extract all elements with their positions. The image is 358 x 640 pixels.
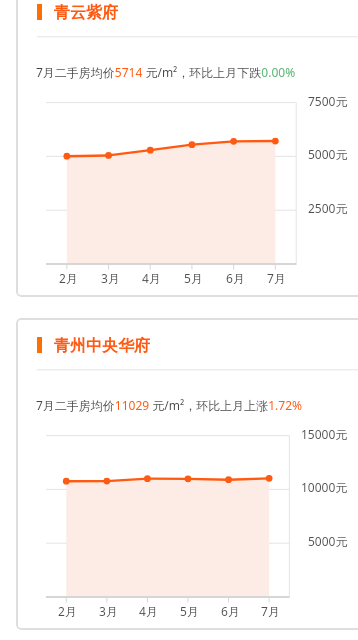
staticText: 2500元 [308,200,348,216]
staticText: 7月 [261,603,280,619]
staticText: 5月 [184,270,203,286]
staticText: 5000元 [308,146,348,162]
staticText: 3月 [99,603,118,619]
button[interactable]: 青云紫府 [16,0,358,297]
staticText: 7月二手房均价5714 元/m²，环比上月下跌0.00% [36,64,296,80]
staticText: 10000元 [301,479,348,495]
staticText: 15000元 [301,426,348,442]
staticText: 6月 [221,603,240,619]
staticText: 5000元 [308,533,348,549]
staticText: 7月 [267,270,286,286]
staticText: 2月 [59,270,78,286]
staticText: 4月 [142,270,161,286]
staticText: 青云紫府 [54,3,118,23]
staticText: 青州中央华府 [54,336,150,356]
staticText: 2月 [58,603,77,619]
staticText: 7500元 [308,93,348,109]
staticText: 7月二手房均价11029 元/m²，环比上月上涨1.72% [36,397,302,413]
button[interactable]: 青州中央华府 [16,318,358,630]
staticText: 4月 [139,603,158,619]
staticText: 3月 [101,270,120,286]
staticText: 5月 [180,603,199,619]
staticText: 6月 [226,270,245,286]
